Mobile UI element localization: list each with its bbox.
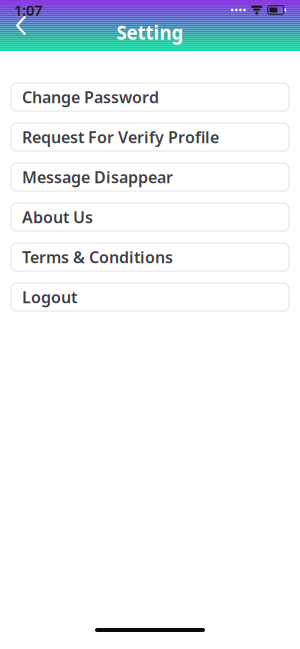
button[interactable]: Logout [11, 283, 289, 311]
button[interactable]: Terms & Conditions [11, 243, 289, 271]
staticText: Change Password [22, 86, 159, 108]
staticText: Setting [116, 20, 183, 45]
button[interactable]: Back [4, 6, 38, 44]
button[interactable]: Message Disappear [11, 163, 289, 191]
staticText: Request For Verify Profile [22, 126, 219, 148]
button[interactable]: Request For Verify Profile [11, 123, 289, 151]
staticText: Terms & Conditions [22, 246, 173, 268]
staticText: 1:07 [14, 0, 42, 20]
staticText: Logout [22, 286, 77, 308]
staticText: About Us [22, 206, 93, 228]
button[interactable]: About Us [11, 203, 289, 231]
staticText: Message Disappear [22, 166, 173, 188]
button[interactable]: Change Password [11, 83, 289, 111]
